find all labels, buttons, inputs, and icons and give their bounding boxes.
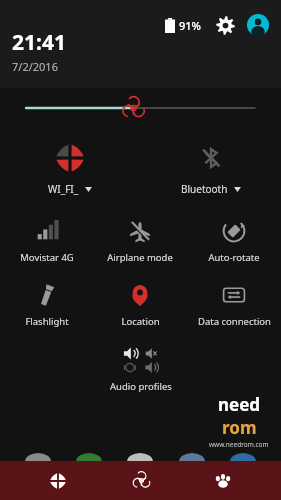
staticText: 7/2/2016 — [12, 59, 58, 74]
staticText: Data connection — [198, 315, 271, 328]
button[interactable]: Brightness — [0, 88, 281, 128]
button[interactable]: WI_FI_ — [0, 138, 140, 200]
staticText: Airplane mode — [107, 251, 173, 264]
staticText: www.needrom.com — [209, 440, 269, 449]
staticText: Location — [121, 315, 160, 328]
button[interactable]: Movistar 4G — [0, 216, 93, 266]
button[interactable]: Data connection — [187, 280, 281, 330]
staticText: need — [218, 393, 261, 416]
button[interactable]: Audio profiles — [0, 344, 281, 393]
button[interactable]: Location — [93, 280, 187, 330]
button[interactable]: Flashlight — [0, 280, 93, 330]
button[interactable]: Recents — [199, 461, 247, 500]
button[interactable]: Back — [34, 461, 82, 500]
button[interactable]: Home — [117, 461, 165, 500]
staticText: rom — [222, 416, 257, 439]
staticText: 21:41 — [12, 28, 66, 57]
button[interactable]: Auto-rotate — [187, 216, 281, 266]
button[interactable]: Bluetooth — [140, 138, 281, 200]
button[interactable]: User profile — [245, 12, 271, 38]
staticText: Audio profiles — [110, 380, 172, 393]
staticText: WI_FI_ — [48, 182, 79, 196]
staticText: Flashlight — [25, 315, 69, 328]
staticText: Auto-rotate — [208, 251, 260, 264]
staticText: 91% — [179, 18, 201, 33]
button[interactable]: Airplane mode — [93, 216, 187, 266]
staticText: Movistar 4G — [20, 251, 74, 264]
staticText: Bluetooth — [181, 182, 228, 196]
button[interactable]: Settings — [213, 13, 237, 37]
